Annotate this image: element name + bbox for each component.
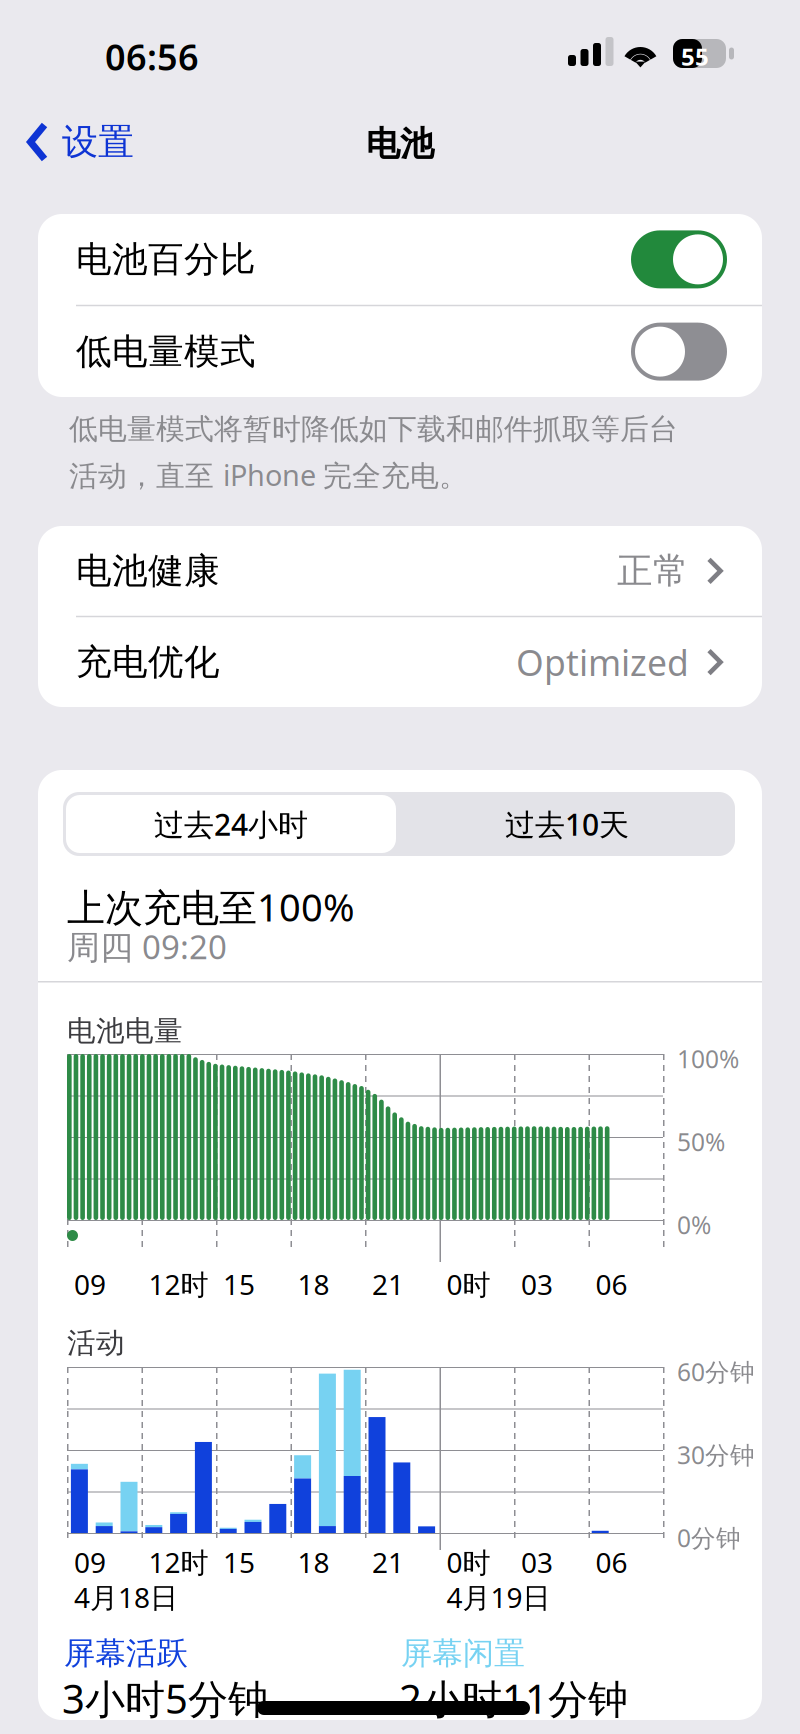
staticText: 12时 <box>148 1265 208 1303</box>
staticText: 屏幕闲置 <box>401 1634 525 1673</box>
staticText: 15 <box>223 1265 255 1303</box>
staticText: 09 <box>74 1543 106 1581</box>
staticText: 18 <box>297 1543 329 1581</box>
staticText: 18 <box>297 1265 329 1303</box>
staticText: 09 <box>74 1265 106 1303</box>
staticText: 06:56 <box>105 32 199 81</box>
staticText: 3小时5分钟 <box>62 1671 268 1725</box>
staticText: 15 <box>223 1543 255 1581</box>
staticText: 100% <box>677 1042 739 1075</box>
button[interactable]: 设置 <box>0 96 148 188</box>
staticText: 55 <box>681 40 709 73</box>
staticText: 上次充电至100% <box>67 881 355 933</box>
staticText: 60分钟 <box>677 1355 755 1388</box>
staticText: 充电优化 <box>76 640 220 684</box>
staticText: 2小时11分钟 <box>399 1671 628 1725</box>
staticText: 4月18日 <box>74 1578 178 1616</box>
staticText: 03 <box>521 1265 553 1303</box>
staticText: 12时 <box>148 1543 208 1581</box>
staticText: 活动，直至 iPhone 完全充电。 <box>69 455 468 494</box>
staticText: 0分钟 <box>677 1521 741 1554</box>
button[interactable]: 过去24小时 <box>63 792 399 856</box>
staticText: 4月19日 <box>446 1578 550 1616</box>
staticText: 电池电量 <box>67 1013 183 1049</box>
button[interactable]: 充电优化 <box>38 617 762 707</box>
staticText: 过去10天 <box>505 804 629 844</box>
staticText: 周四 09:20 <box>67 924 227 969</box>
button[interactable]: 低电量模式 <box>38 306 762 397</box>
staticText: 屏幕活跃 <box>64 1634 188 1673</box>
staticText: 06 <box>595 1265 627 1303</box>
staticText: 21 <box>372 1265 404 1303</box>
button[interactable]: 过去10天 <box>399 792 735 856</box>
staticText: 过去24小时 <box>154 804 308 844</box>
staticText: 低电量模式将暂时降低如下载和邮件抓取等后台 <box>69 411 678 447</box>
staticText: 06 <box>595 1543 627 1581</box>
staticText: 21 <box>372 1543 404 1581</box>
button[interactable]: 电池百分比 <box>38 214 762 305</box>
staticText: 50% <box>677 1125 725 1158</box>
button[interactable]: 电池健康 <box>38 526 762 616</box>
staticText: 设置 <box>62 119 134 165</box>
staticText: 0时 <box>446 1265 490 1303</box>
staticText: 电池健康 <box>76 548 220 593</box>
staticText: 电池 <box>366 123 434 165</box>
staticText: 电池百分比 <box>76 237 256 282</box>
staticText: 低电量模式 <box>76 329 256 374</box>
staticText: 正常 <box>617 548 689 593</box>
staticText: Optimized <box>516 638 689 686</box>
staticText: 0时 <box>446 1543 490 1581</box>
staticText: 活动 <box>67 1325 125 1361</box>
staticText: 30分钟 <box>677 1438 755 1471</box>
staticText: 0% <box>677 1208 711 1241</box>
staticText: 03 <box>521 1543 553 1581</box>
